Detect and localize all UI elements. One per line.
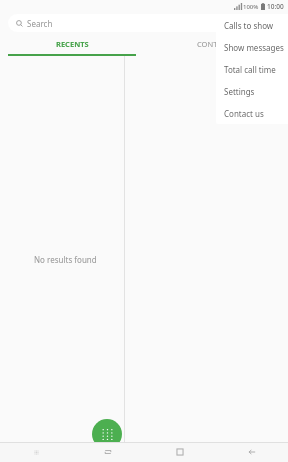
button[interactable]: Search [8,14,280,32]
staticText: CONTACTS [197,39,235,49]
staticText: 10:00 [267,2,284,11]
button[interactable]: Menu [0,442,72,462]
button[interactable]: Home [144,442,216,462]
staticText: Calls to show [224,20,274,31]
button[interactable]: Recent apps [72,442,144,462]
staticText: Total call time [224,64,276,75]
staticText: 100% [243,3,259,11]
button[interactable]: Settings [216,80,288,102]
staticText: Contact us [224,108,264,119]
button[interactable]: Show messages [216,36,288,58]
button[interactable]: CONTACTS [144,34,288,54]
staticText: Show messages [224,42,284,53]
button[interactable]: Total call time [216,58,288,80]
button[interactable]: RECENTS [0,34,144,54]
button[interactable]: Back [216,442,288,462]
button[interactable]: Calls to show [216,14,288,36]
staticText: No results found [34,254,97,265]
button[interactable]: Contact us [216,102,288,124]
staticText: Search [27,18,53,29]
button[interactable]: Dialpad [92,419,122,449]
staticText: RECENTS [56,39,89,49]
staticText: Settings [224,86,255,97]
